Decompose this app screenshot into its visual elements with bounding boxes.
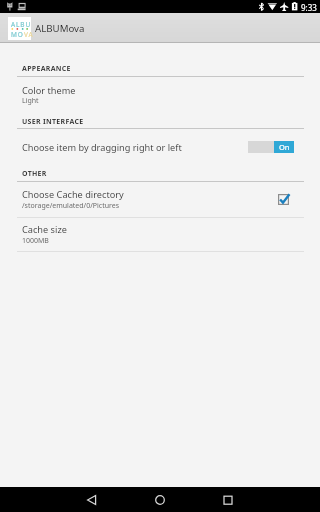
- button[interactable]: Choose cache directory, checked: [277, 193, 290, 206]
- staticText: Color theme: [22, 84, 76, 97]
- staticText: APPEARANCE: [22, 64, 71, 74]
- staticText: MO: [11, 30, 24, 39]
- staticText: OTHER: [22, 169, 47, 179]
- staticText: On: [279, 142, 290, 152]
- staticText: 9:33: [301, 2, 317, 13]
- button[interactable]: Drag-to-choose toggle, On: [248, 141, 294, 153]
- staticText: VA: [24, 30, 34, 39]
- staticText: Choose item by dragging right or left: [22, 141, 182, 154]
- button[interactable]: Choose item by dragging right or left: [0, 133, 320, 163]
- button[interactable]: Back: [82, 487, 102, 512]
- staticText: 1000MB: [22, 236, 49, 246]
- staticText: Cache size: [22, 223, 67, 236]
- staticText: Choose Cache directory: [22, 188, 124, 201]
- staticText: ALBUMova: [35, 22, 85, 35]
- staticText: /storage/emulated/0/Pictures: [22, 201, 120, 211]
- button[interactable]: ALBUMova app icon: [8, 17, 31, 40]
- button[interactable]: Home: [150, 487, 170, 512]
- button[interactable]: Color theme: [0, 79, 320, 110]
- button[interactable]: Recent apps: [218, 487, 238, 512]
- button[interactable]: Choose Cache directory: [0, 184, 320, 217]
- button[interactable]: Cache size: [0, 218, 320, 251]
- staticText: USER INTERFACE: [22, 117, 84, 127]
- staticText: ALBU: [11, 20, 32, 29]
- staticText: Light: [22, 96, 39, 106]
